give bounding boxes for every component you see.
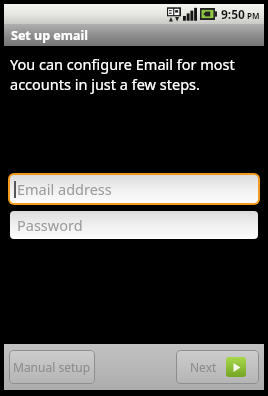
button[interactable]: Email address: [10, 175, 258, 203]
staticText: Set up email: [11, 27, 88, 44]
staticText: You can configure Email for most account…: [10, 54, 235, 95]
button[interactable]: Next: [176, 350, 259, 384]
staticText: Manual setup: [13, 359, 91, 375]
staticText: PM: [247, 10, 260, 21]
staticText: Next: [190, 359, 217, 375]
other: Next: [226, 357, 246, 377]
button[interactable]: Manual setup: [9, 350, 95, 384]
button[interactable]: Password: [10, 211, 258, 239]
staticText: 9:50: [221, 6, 245, 22]
staticText: Password: [17, 215, 83, 235]
staticText: Email address: [17, 179, 112, 199]
